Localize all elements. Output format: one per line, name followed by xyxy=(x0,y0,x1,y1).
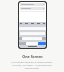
button[interactable] xyxy=(20,32,22,35)
button[interactable] xyxy=(22,37,24,40)
button[interactable] xyxy=(19,27,21,30)
button[interactable]: Done xyxy=(38,42,46,45)
button[interactable] xyxy=(20,3,45,6)
button[interactable] xyxy=(23,27,25,30)
staticText: One Screen xyxy=(22,54,43,59)
button[interactable] xyxy=(22,32,24,35)
staticText: Fill in every field on a single screen. … xyxy=(3,60,61,69)
button[interactable] xyxy=(20,7,45,10)
button[interactable] xyxy=(21,27,23,30)
